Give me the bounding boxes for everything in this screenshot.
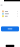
button[interactable] bbox=[0, 13, 20, 15]
button[interactable] bbox=[0, 10, 20, 13]
button[interactable] bbox=[0, 15, 20, 17]
button[interactable] bbox=[0, 26, 20, 31]
